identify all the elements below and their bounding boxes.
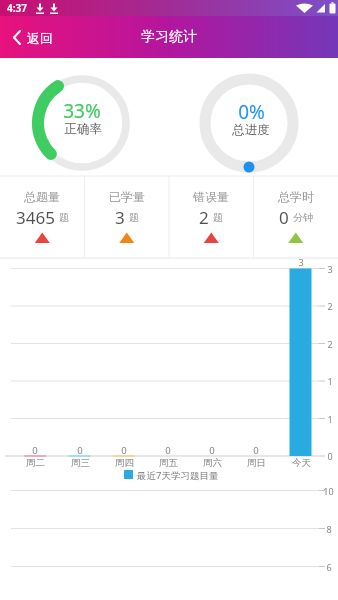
staticText: 0: [77, 444, 83, 457]
staticText: 周五: [159, 457, 178, 469]
staticText: 题: [213, 211, 223, 224]
staticText: 总学时: [278, 189, 314, 204]
button[interactable]: [6, 20, 66, 54]
staticText: 33%: [63, 98, 101, 124]
staticText: 分钟: [293, 211, 313, 224]
staticText: 10: [323, 485, 334, 497]
staticText: 周日: [247, 457, 266, 469]
staticText: 错误量: [193, 189, 229, 204]
staticText: 周二: [26, 457, 45, 469]
staticText: 2: [327, 300, 333, 312]
staticText: 总题量: [24, 189, 60, 204]
staticText: 周三: [71, 457, 90, 469]
staticText: 学习统计: [141, 28, 197, 46]
staticText: 0%: [238, 99, 265, 125]
staticText: 今天: [292, 457, 311, 469]
staticText: 正确率: [64, 121, 102, 137]
staticText: 3: [115, 206, 125, 228]
staticText: 1: [327, 375, 333, 387]
staticText: 2: [199, 206, 209, 228]
staticText: 4:37: [7, 1, 27, 15]
staticText: 3: [298, 256, 304, 268]
staticText: 3465: [16, 206, 55, 228]
staticText: 题: [129, 211, 139, 224]
staticText: 6: [326, 561, 332, 573]
staticText: 返回: [27, 30, 53, 46]
staticText: 0: [327, 450, 333, 462]
staticText: 最近7天学习题目量: [137, 469, 219, 482]
staticText: 0: [121, 444, 127, 457]
staticText: 2: [327, 338, 333, 350]
staticText: 周四: [115, 457, 134, 469]
staticText: 0: [165, 444, 171, 457]
staticText: 0: [32, 444, 38, 457]
staticText: 3: [327, 263, 333, 275]
staticText: 已学量: [109, 189, 145, 204]
staticText: 0: [253, 444, 259, 457]
staticText: 1: [327, 413, 333, 425]
staticText: 总进度: [232, 122, 270, 138]
staticText: 0: [209, 444, 215, 457]
staticText: 题: [59, 211, 69, 224]
staticText: 周六: [203, 457, 222, 469]
staticText: 0: [279, 206, 289, 228]
staticText: 8: [326, 523, 332, 535]
